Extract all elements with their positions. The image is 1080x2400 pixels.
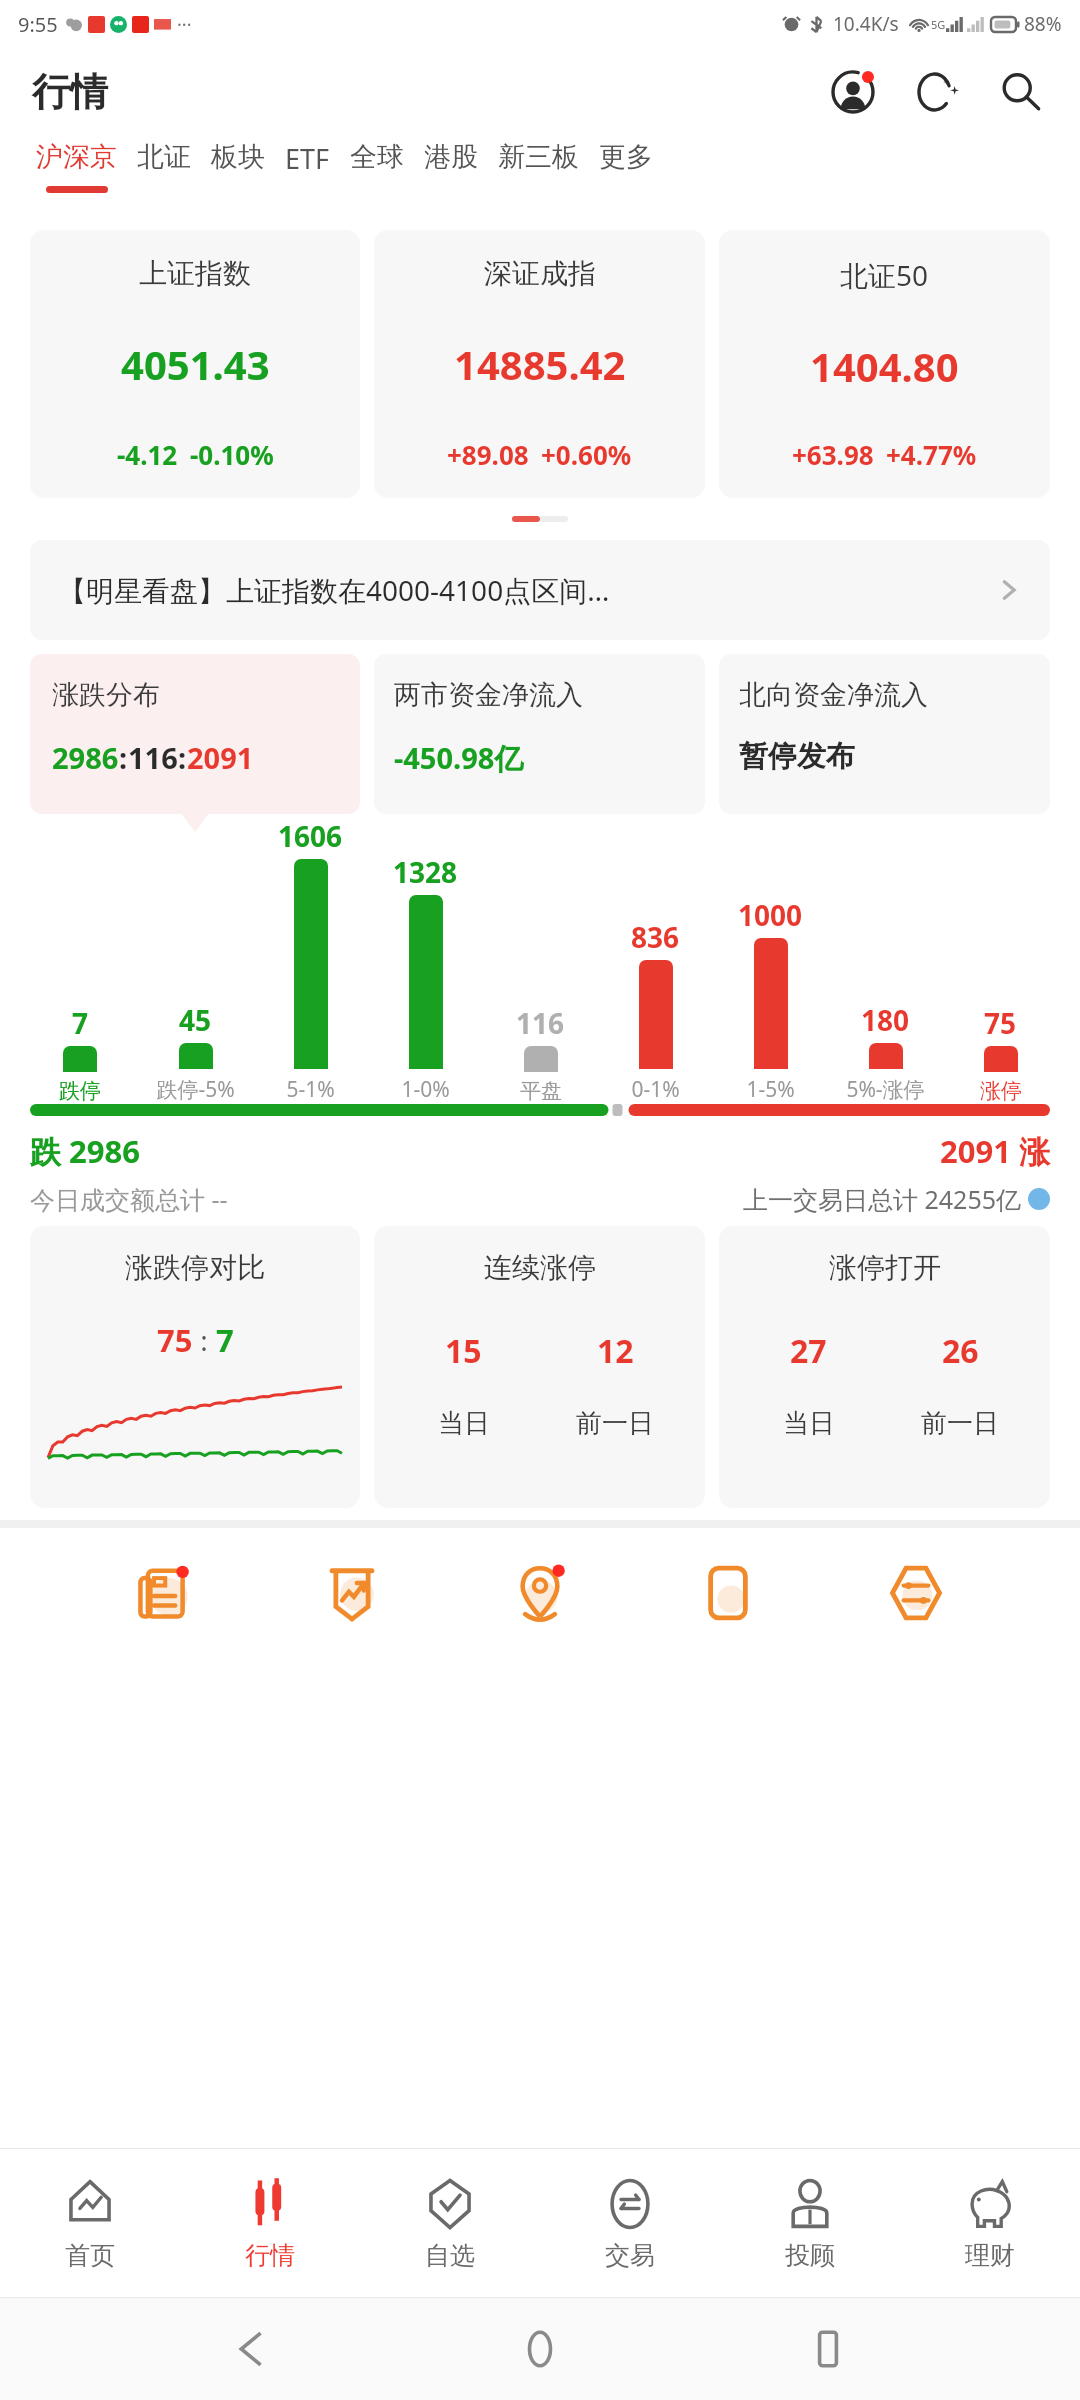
staticText: 上证指数: [139, 256, 251, 291]
staticText: 平盘: [520, 1078, 562, 1104]
button[interactable]: 投顾: [720, 2149, 900, 2297]
button[interactable]: Trends: [306, 1547, 398, 1639]
staticText: 涨跌停对比: [125, 1250, 265, 1285]
staticText: 1-0%: [401, 1075, 450, 1104]
staticText: :: [119, 738, 128, 777]
staticText: 116: [516, 1004, 565, 1042]
staticText: 涨停: [980, 1078, 1022, 1104]
staticText: 1404.80: [810, 339, 959, 393]
staticText: 0-1%: [631, 1075, 680, 1104]
button[interactable]: 交易: [540, 2149, 720, 2297]
button[interactable]: News: [118, 1547, 210, 1639]
staticText: 涨跌分布: [52, 678, 160, 712]
button[interactable]: 涨跌分布: [30, 654, 360, 814]
staticText: 当日: [438, 1407, 490, 1440]
button[interactable]: 更多: [589, 136, 663, 190]
staticText: 深证成指: [484, 256, 596, 291]
staticText: ETF: [285, 140, 330, 177]
button[interactable]: 港股: [414, 136, 488, 190]
button[interactable]: 行情: [180, 2149, 360, 2297]
staticText: 行情: [32, 68, 108, 116]
staticText: 1000: [738, 896, 803, 934]
staticText: 88%: [1024, 11, 1062, 37]
staticText: 180: [861, 1001, 910, 1039]
staticText: 5G: [931, 17, 946, 32]
button[interactable]: Search: [990, 61, 1052, 123]
staticText: 9:55: [18, 11, 58, 38]
staticText: 26: [942, 1329, 979, 1373]
staticText: 7: [216, 1319, 234, 1361]
staticText: -4.12: [117, 437, 178, 472]
staticText: 10.4K/s: [833, 11, 899, 37]
button[interactable]: ETF: [682, 1547, 774, 1639]
button[interactable]: Home: [505, 2314, 575, 2384]
staticText: 交易: [605, 2240, 655, 2271]
button[interactable]: 两市资金净流入: [374, 654, 705, 814]
button[interactable]: Profile: [822, 61, 884, 123]
staticText: 1606: [278, 817, 343, 855]
staticText: 836: [631, 918, 680, 956]
staticText: +0.60%: [541, 437, 632, 472]
staticText: 4051.43: [121, 337, 270, 391]
staticText: 北证50: [840, 256, 929, 294]
button[interactable]: 深证成指: [374, 230, 705, 498]
button[interactable]: 板块: [201, 136, 275, 190]
staticText: +4.77%: [886, 437, 977, 472]
button[interactable]: Recents: [793, 2314, 863, 2384]
staticText: 15: [445, 1329, 482, 1373]
button[interactable]: 北证: [127, 136, 201, 190]
button[interactable]: 北证50: [719, 230, 1050, 498]
staticText: 跌 2986: [30, 1130, 140, 1172]
staticText: 更多: [599, 140, 653, 174]
button[interactable]: 全球: [340, 136, 414, 190]
button[interactable]: Radar: [494, 1547, 586, 1639]
staticText: 27: [790, 1329, 827, 1373]
button[interactable]: Tools: [870, 1547, 962, 1639]
staticText: 75: [984, 1004, 1017, 1042]
button[interactable]: 连续涨停: [374, 1226, 705, 1508]
staticText: 港股: [424, 140, 478, 174]
staticText: 116: [128, 738, 178, 777]
staticText: 全球: [350, 140, 404, 174]
staticText: 跌停-5%: [156, 1075, 235, 1104]
staticText: 板块: [211, 140, 265, 174]
button[interactable]: 涨跌停对比: [30, 1226, 360, 1508]
button[interactable]: 理财: [900, 2149, 1080, 2297]
button[interactable]: 自选: [360, 2149, 540, 2297]
staticText: :: [193, 1321, 216, 1359]
button[interactable]: 沪深京: [26, 136, 127, 197]
staticText: 1328: [393, 853, 458, 891]
button[interactable]: 北向资金净流入: [719, 654, 1050, 814]
staticText: 1-5%: [746, 1075, 795, 1104]
staticText: 2091: [187, 738, 254, 777]
staticText: 新三板: [498, 140, 579, 174]
staticText: 自选: [425, 2240, 475, 2271]
staticText: 理财: [965, 2240, 1015, 2271]
staticText: 5-1%: [286, 1075, 335, 1104]
staticText: 【明星看盘】上证指数在4000-4100点区间…: [58, 571, 996, 609]
staticText: 投顾: [785, 2240, 835, 2271]
button[interactable]: 【明星看盘】上证指数在4000-4100点区间…: [30, 540, 1050, 640]
staticText: 行情: [245, 2240, 295, 2271]
staticText: 2091 涨: [940, 1130, 1050, 1172]
staticText: 连续涨停: [484, 1250, 596, 1285]
button[interactable]: Night mode: [906, 61, 968, 123]
staticText: ···: [177, 12, 192, 37]
staticText: 45: [179, 1001, 212, 1039]
button[interactable]: ETF: [275, 136, 340, 193]
button[interactable]: 新三板: [488, 136, 589, 190]
staticText: 2986: [52, 738, 119, 777]
staticText: 涨停打开: [829, 1250, 941, 1285]
button[interactable]: 上证指数: [30, 230, 360, 498]
button[interactable]: 涨停打开: [719, 1226, 1050, 1508]
staticText: 北证: [137, 140, 191, 174]
staticText: 上一交易日总计 24255亿: [743, 1182, 1022, 1216]
staticText: 暂停发布: [739, 738, 855, 775]
button[interactable]: Back: [218, 2314, 288, 2384]
staticText: 前一日: [576, 1407, 654, 1440]
staticText: -450.98亿: [394, 738, 524, 778]
button[interactable]: 首页: [0, 2149, 180, 2297]
staticText: 首页: [65, 2240, 115, 2271]
staticText: +63.98: [792, 437, 874, 472]
staticText: 5%-涨停: [846, 1075, 925, 1104]
